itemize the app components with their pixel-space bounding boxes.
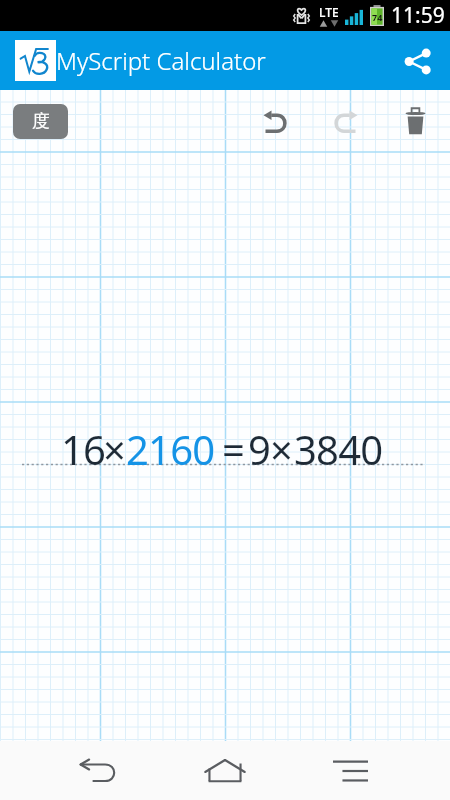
staticText: 9 [248, 422, 271, 476]
button[interactable]: Delete [393, 99, 437, 143]
staticText: × [270, 422, 293, 476]
button[interactable]: Menu [321, 748, 379, 793]
staticText: 11:59 [391, 1, 445, 30]
staticText: 74 [372, 11, 383, 23]
staticText: 2160 [126, 422, 215, 476]
staticText: 度 [32, 110, 50, 133]
staticText: = [222, 422, 245, 476]
button[interactable]: Undo [253, 99, 297, 143]
button[interactable]: Redo [323, 99, 367, 143]
button[interactable]: Share [393, 37, 441, 85]
button[interactable]: 度 [13, 104, 68, 139]
staticText: × [103, 422, 126, 476]
button[interactable]: Home [195, 748, 255, 793]
staticText: LTE [319, 4, 339, 20]
button[interactable]: Back [69, 748, 127, 793]
staticText: 3840 [294, 422, 383, 476]
staticText: 16 [61, 422, 106, 476]
staticText: MyScript Calculator [56, 44, 266, 77]
